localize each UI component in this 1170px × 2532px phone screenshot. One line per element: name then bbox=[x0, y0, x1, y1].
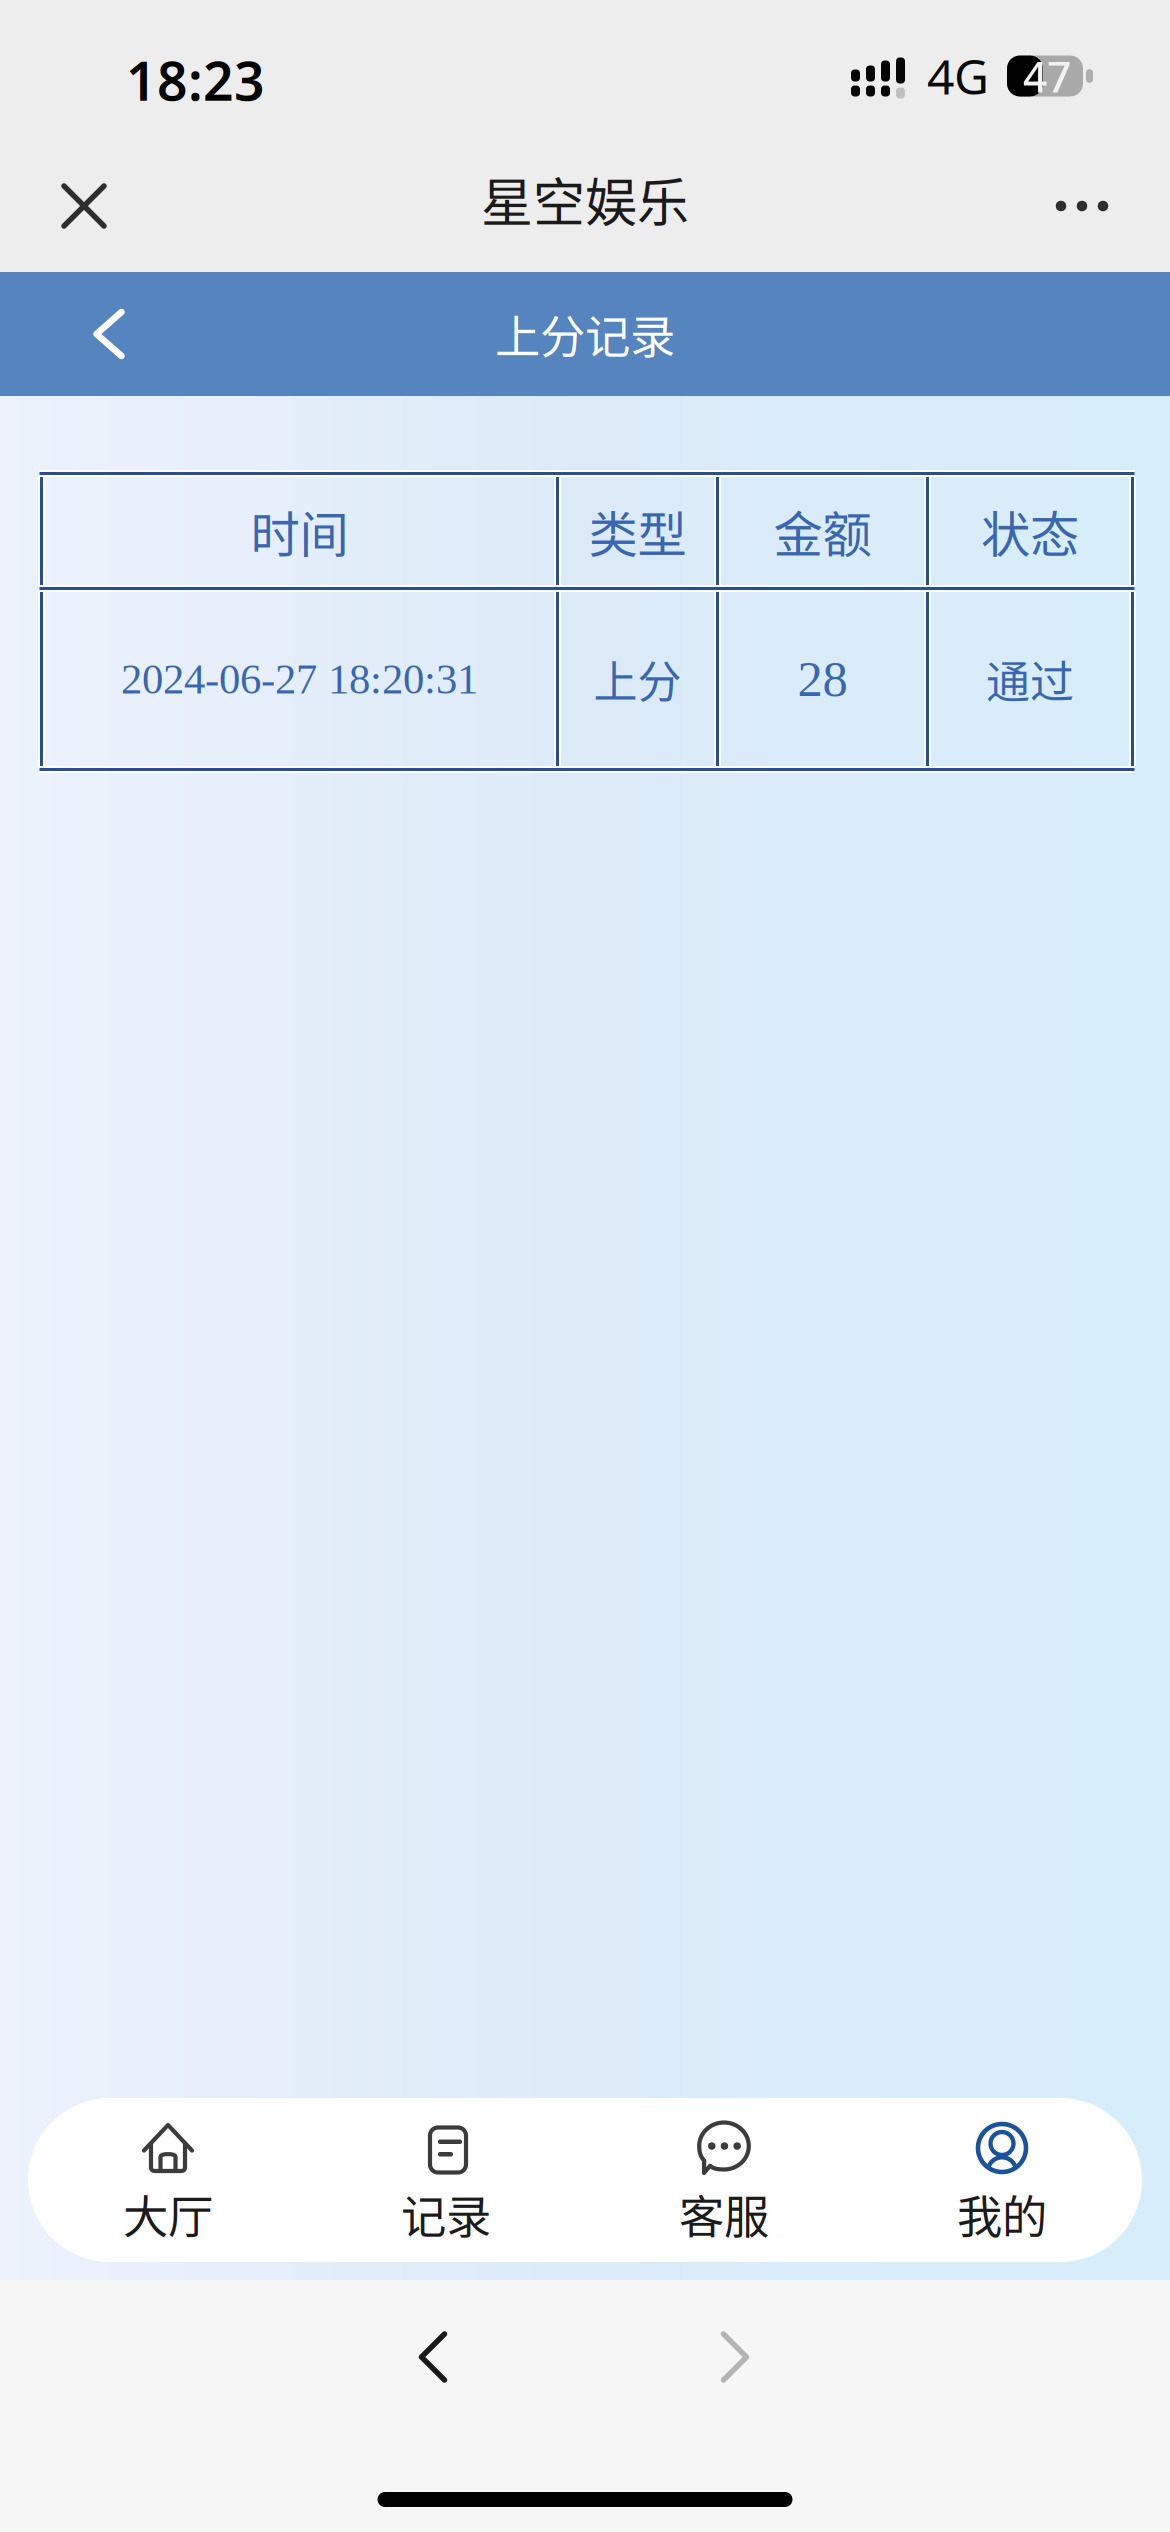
button[interactable]: Forward bbox=[690, 2312, 780, 2402]
staticText: 客服 bbox=[679, 2181, 769, 2247]
staticText: 上分记录 bbox=[495, 301, 675, 367]
button[interactable]: 我的 bbox=[863, 2098, 1141, 2262]
staticText: 金额 bbox=[773, 495, 871, 567]
button[interactable]: Back bbox=[388, 2312, 478, 2402]
staticText: 记录 bbox=[401, 2181, 491, 2247]
staticText: 时间 bbox=[250, 495, 348, 567]
staticText: 18:23 bbox=[126, 45, 265, 115]
staticText: 28 bbox=[797, 651, 847, 707]
staticText: 上分 bbox=[593, 647, 681, 711]
staticText: 2024-06-27 18:20:31 bbox=[121, 655, 478, 703]
staticText: 4G bbox=[927, 44, 989, 108]
button[interactable]: Close bbox=[24, 146, 144, 266]
staticText: 大厅 bbox=[123, 2181, 213, 2247]
staticText: 47 bbox=[1023, 48, 1071, 104]
button[interactable]: 记录 bbox=[307, 2098, 585, 2262]
staticText: 我的 bbox=[957, 2181, 1047, 2247]
button[interactable]: 大厅 bbox=[29, 2098, 307, 2262]
button[interactable]: Back bbox=[54, 279, 164, 389]
button[interactable]: 客服 bbox=[585, 2098, 863, 2262]
staticText: 通过 bbox=[986, 647, 1074, 711]
staticText: 状态 bbox=[981, 495, 1079, 567]
button[interactable]: More bbox=[1022, 146, 1142, 266]
staticText: 类型 bbox=[588, 495, 686, 567]
staticText: 星空娱乐 bbox=[481, 161, 689, 237]
